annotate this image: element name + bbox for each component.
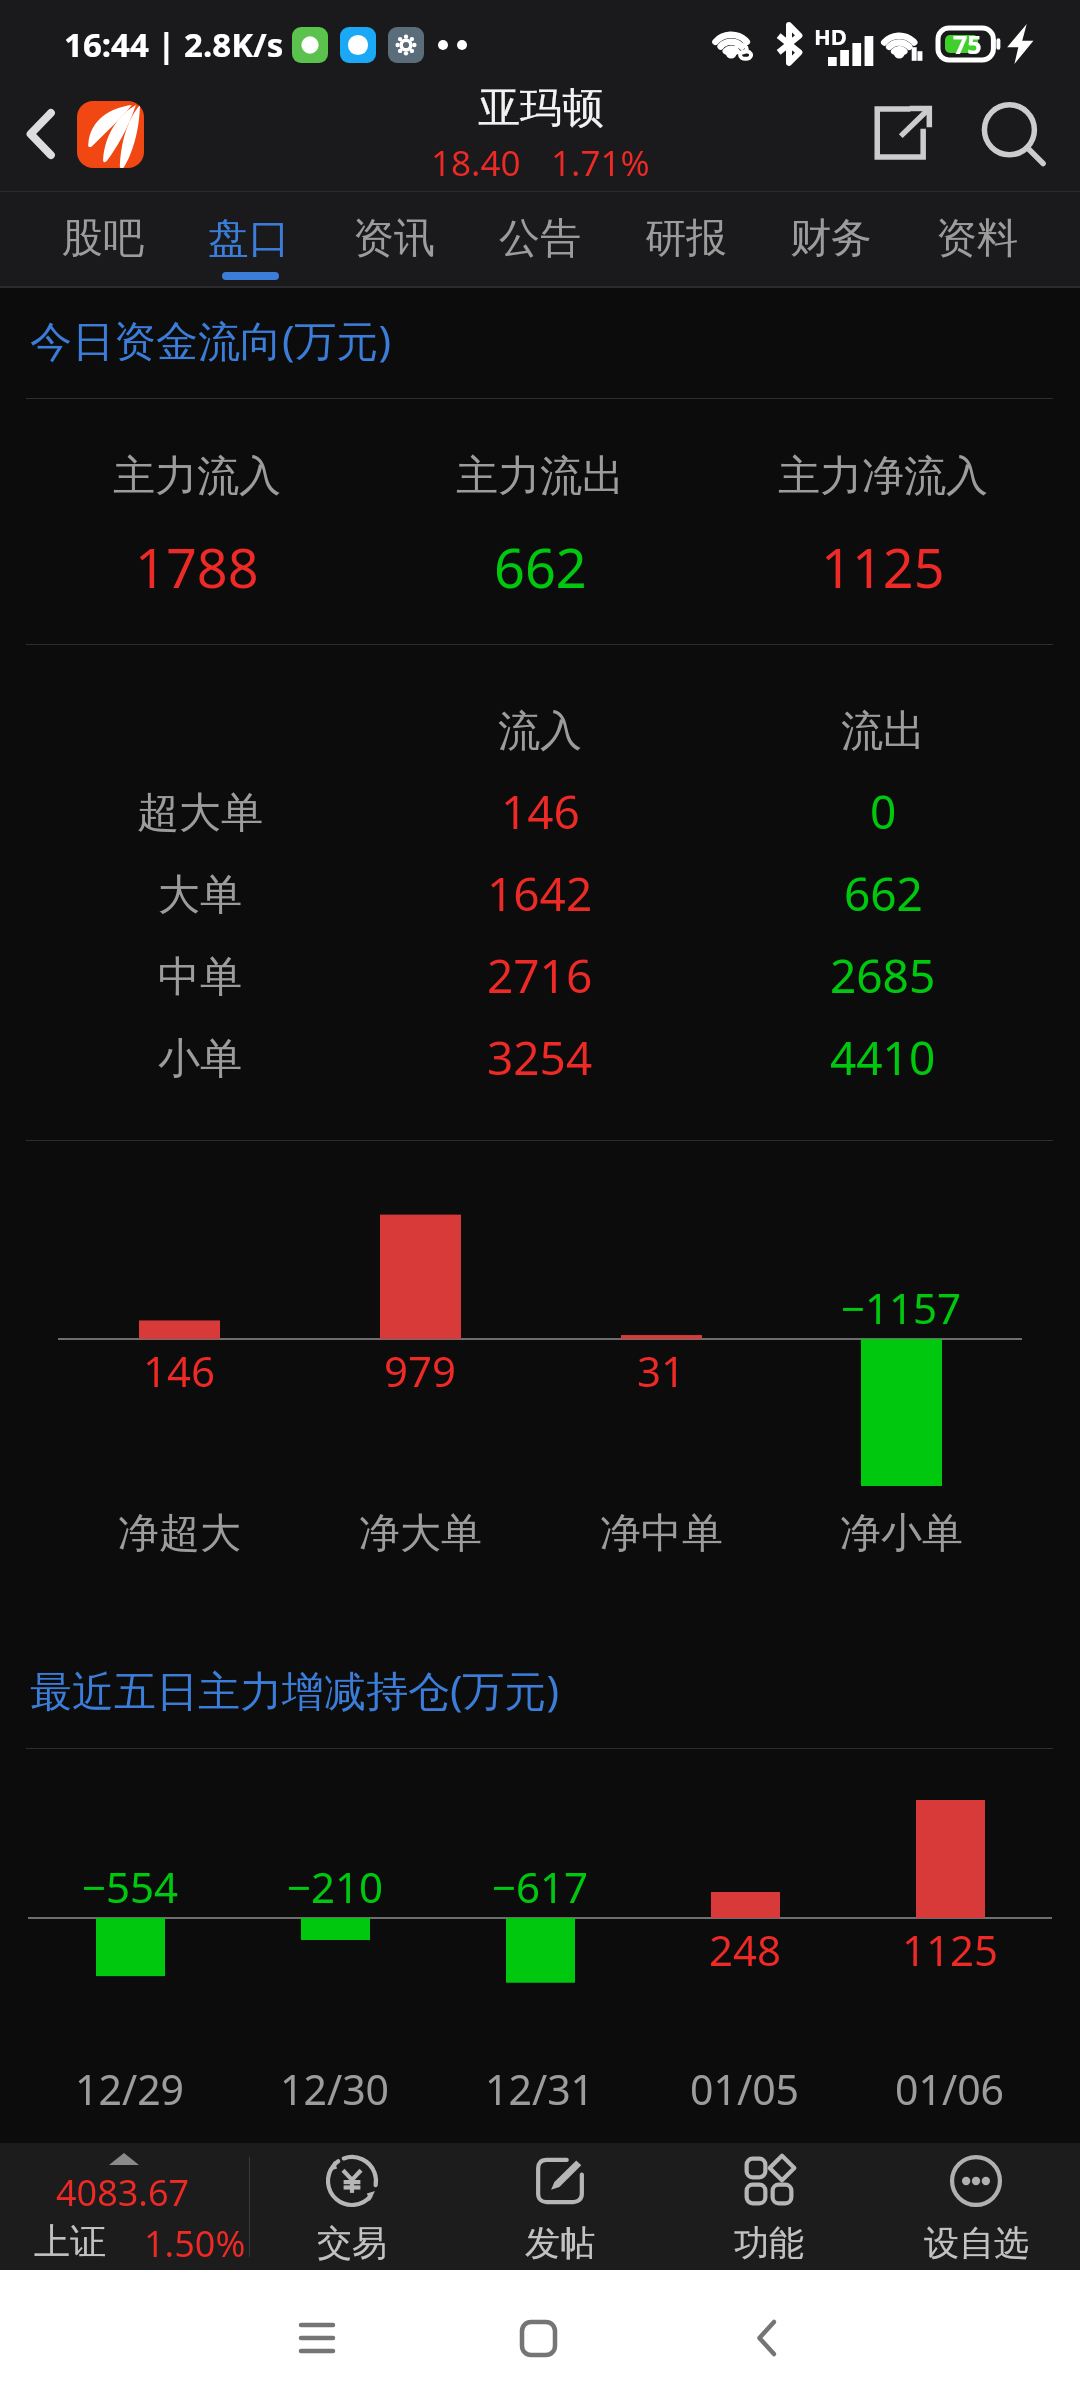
- staticText: 今日资金流向(万元): [30, 311, 392, 368]
- staticText: 净小单: [840, 1508, 963, 1560]
- button[interactable]: Eastmoney: [77, 101, 144, 168]
- staticText: 主力净流入: [778, 450, 988, 503]
- staticText: 盘口: [208, 213, 290, 265]
- button[interactable]: 研报: [614, 192, 758, 286]
- staticText: 1125: [902, 1921, 999, 1978]
- button[interactable]: 财务: [759, 192, 903, 286]
- staticText: 1.50%: [144, 2219, 246, 2268]
- staticText: 发帖: [525, 2221, 595, 2265]
- button[interactable]: 上证指数 4083.67 +1.50%: [0, 2143, 249, 2270]
- staticText: 超大单: [137, 787, 263, 840]
- staticText: 4083.67: [56, 2168, 190, 2217]
- staticText: 662: [494, 530, 587, 604]
- staticText: −1157: [841, 1279, 962, 1336]
- button[interactable]: 功能: [665, 2143, 873, 2270]
- staticText: 交易: [317, 2221, 387, 2265]
- staticText: 146: [143, 1342, 216, 1399]
- staticText: 01/05: [690, 2061, 800, 2117]
- staticText: 亚玛顿: [478, 82, 604, 135]
- staticText: 3254: [487, 1026, 593, 1089]
- staticText: 1125: [821, 530, 945, 604]
- staticText: 12/30: [280, 2061, 390, 2117]
- staticText: 流入: [498, 705, 582, 758]
- button[interactable]: 交易: [248, 2143, 456, 2270]
- button[interactable]: Search: [969, 94, 1061, 178]
- button[interactable]: 发帖: [456, 2143, 664, 2270]
- staticText: 净超大: [118, 1508, 241, 1560]
- staticText: 16:44 | 2.8K/s: [64, 22, 284, 67]
- button[interactable]: Share: [857, 91, 949, 175]
- staticText: 资料: [936, 213, 1018, 265]
- button[interactable]: 设自选: [872, 2143, 1080, 2270]
- staticText: HD: [814, 21, 847, 51]
- staticText: 大单: [158, 869, 242, 922]
- staticText: 146: [501, 780, 580, 843]
- staticText: 净中单: [600, 1508, 723, 1560]
- staticText: 研报: [645, 213, 727, 265]
- staticText: 小单: [158, 1033, 242, 1086]
- staticText: 18.40: [431, 139, 521, 186]
- button[interactable]: 公告: [468, 192, 612, 286]
- staticText: 31: [637, 1342, 686, 1399]
- staticText: 0: [870, 780, 897, 843]
- staticText: 资讯: [353, 213, 435, 265]
- staticText: 净大单: [359, 1508, 482, 1560]
- staticText: 662: [844, 862, 923, 925]
- button[interactable]: Recent apps: [257, 2278, 377, 2398]
- staticText: 75: [953, 27, 982, 61]
- button[interactable]: Home: [478, 2278, 598, 2398]
- staticText: 最近五日主力增减持仓(万元): [30, 1661, 560, 1718]
- button[interactable]: Back: [0, 93, 82, 175]
- staticText: 248: [709, 1921, 782, 1978]
- staticText: 1.71%: [551, 139, 650, 186]
- staticText: 4410: [830, 1026, 936, 1089]
- staticText: 上证: [34, 2219, 106, 2264]
- staticText: 公告: [499, 213, 581, 265]
- button[interactable]: 股吧: [31, 192, 175, 286]
- staticText: 设自选: [924, 2221, 1029, 2265]
- staticText: 中单: [158, 951, 242, 1004]
- staticText: −617: [492, 1858, 589, 1915]
- staticText: 主力流出: [456, 450, 624, 503]
- staticText: 股吧: [62, 213, 144, 265]
- staticText: 12/31: [485, 2061, 595, 2117]
- button[interactable]: Back: [707, 2278, 827, 2398]
- staticText: 01/06: [895, 2061, 1005, 2117]
- button[interactable]: 资讯: [322, 192, 466, 286]
- button[interactable]: 盘口: [177, 192, 321, 286]
- staticText: 979: [384, 1342, 457, 1399]
- staticText: 财务: [790, 213, 872, 265]
- button[interactable]: 资料: [905, 192, 1049, 286]
- staticText: 功能: [734, 2221, 804, 2265]
- staticText: 1642: [487, 862, 593, 925]
- staticText: 2716: [487, 944, 593, 1007]
- staticText: 主力流入: [113, 450, 281, 503]
- staticText: 流出: [841, 705, 925, 758]
- staticText: 2685: [830, 944, 936, 1007]
- staticText: 12/29: [75, 2061, 185, 2117]
- staticText: −554: [82, 1858, 179, 1915]
- staticText: 1788: [135, 530, 259, 604]
- staticText: −210: [287, 1858, 384, 1915]
